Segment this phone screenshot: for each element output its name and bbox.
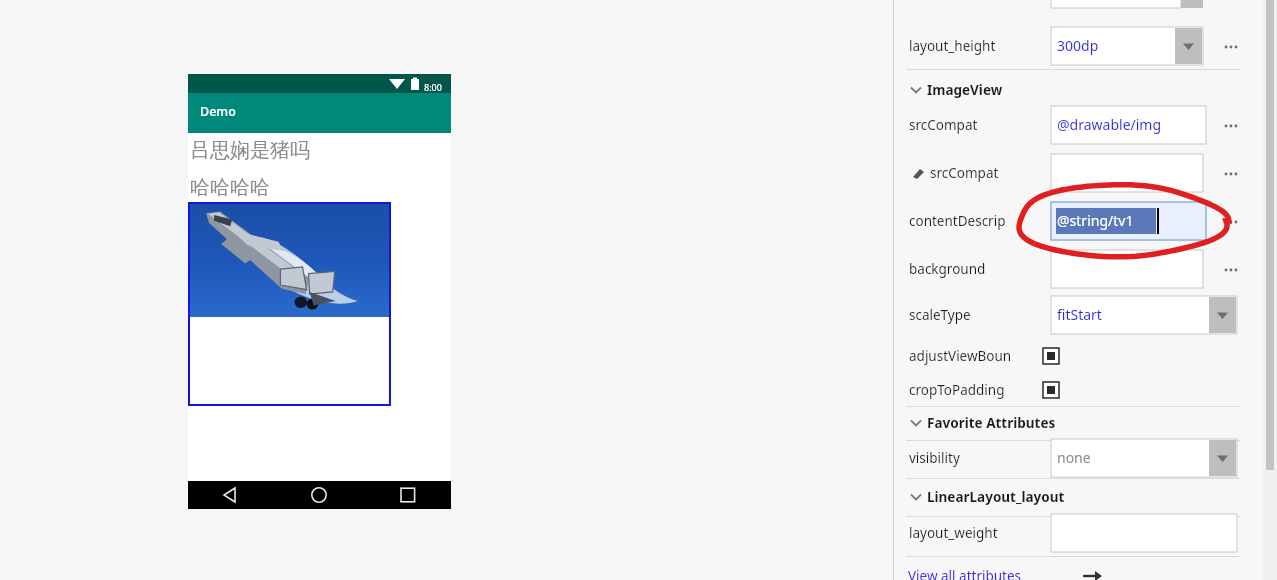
button[interactable] — [905, 250, 1235, 288]
button[interactable]: Back — [216, 483, 254, 507]
button[interactable] — [905, 371, 1235, 409]
button[interactable]: Recents — [389, 483, 427, 507]
staticText: fitStart — [1057, 305, 1102, 324]
staticText: layout_weight — [909, 524, 998, 542]
staticText: contentDescrip — [909, 212, 1006, 230]
staticText: 300dp — [1057, 36, 1099, 55]
staticText: ImageView — [927, 81, 1003, 99]
staticText: scaleType — [909, 306, 971, 324]
button[interactable] — [905, 337, 1235, 375]
staticText: visibility — [909, 449, 960, 467]
staticText: Demo — [200, 103, 236, 120]
staticText: LinearLayout_layout — [927, 488, 1065, 506]
button[interactable] — [905, 202, 1235, 240]
button[interactable] — [905, 27, 1235, 65]
button[interactable] — [905, 439, 1235, 477]
staticText: layout_height — [909, 37, 996, 55]
button[interactable]: Demo app bar — [188, 93, 451, 133]
button[interactable] — [905, 514, 1235, 552]
staticText: View all attributes — [908, 567, 1022, 580]
staticText: none — [1057, 448, 1091, 467]
button[interactable] — [906, 560, 1106, 580]
staticText: @string/tv1 — [1057, 211, 1134, 230]
staticText: background — [909, 260, 986, 278]
button[interactable] — [905, 154, 1235, 192]
staticText: srcCompat — [930, 164, 999, 182]
button[interactable] — [905, 106, 1235, 144]
staticText: adjustViewBoun — [909, 347, 1012, 365]
staticText: @drawable/img — [1057, 115, 1162, 134]
staticText: Favorite Attributes — [927, 414, 1056, 432]
staticText: 8:00 — [424, 81, 442, 93]
button[interactable]: Home — [300, 483, 338, 507]
button[interactable]: Image preview — [189, 203, 390, 405]
staticText: 哈哈哈哈 — [190, 175, 270, 200]
button[interactable] — [905, 296, 1235, 334]
staticText: 吕思娴是猪吗 — [190, 138, 310, 163]
staticText: cropToPadding — [909, 381, 1005, 399]
staticText: srcCompat — [909, 116, 978, 134]
